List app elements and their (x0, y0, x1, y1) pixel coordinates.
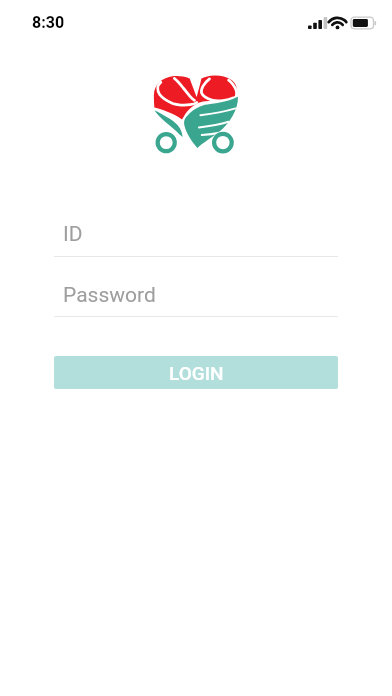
button[interactable]: LOGIN (54, 356, 338, 389)
staticText: 8:30 (32, 13, 65, 32)
staticText: ID (63, 222, 83, 247)
staticText: Password (63, 283, 156, 308)
other: Status icons (308, 12, 376, 32)
staticText: LOGIN (169, 362, 224, 384)
